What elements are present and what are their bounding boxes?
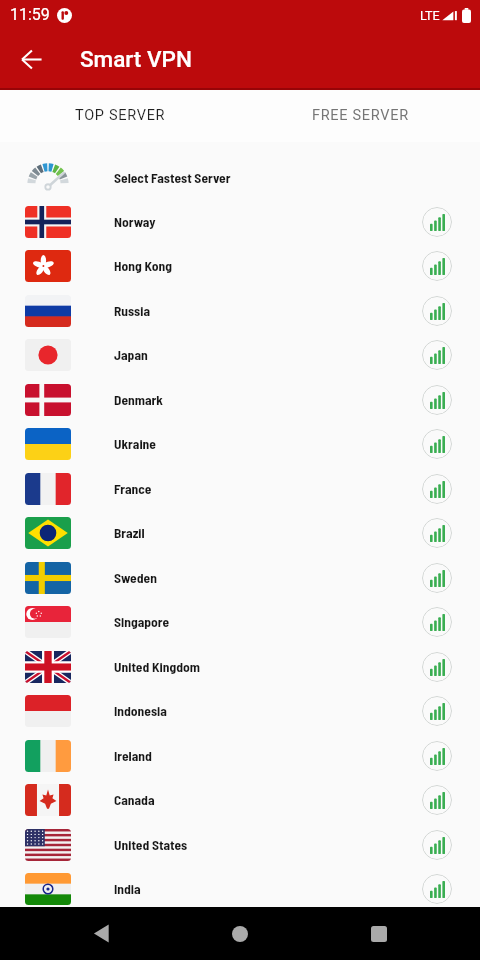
staticText: FREE SERVER bbox=[312, 107, 409, 124]
button[interactable]: Japan bbox=[0, 333, 480, 377]
button[interactable]: United Kingdom bbox=[0, 645, 480, 689]
staticText: Japan bbox=[114, 346, 148, 362]
button[interactable]: Connect bbox=[422, 741, 452, 771]
button[interactable]: Connect bbox=[422, 429, 452, 459]
button[interactable]: Connect bbox=[422, 518, 452, 548]
button[interactable]: Canada bbox=[0, 778, 480, 822]
staticText: Russia bbox=[114, 302, 151, 318]
button[interactable]: Ukraine bbox=[0, 422, 480, 466]
button[interactable]: France bbox=[0, 467, 480, 511]
button[interactable]: Connect bbox=[422, 474, 452, 504]
button[interactable]: Russia bbox=[0, 289, 480, 333]
staticText: Ukraine bbox=[114, 435, 156, 451]
button[interactable]: Connect bbox=[422, 385, 452, 415]
staticText: France bbox=[114, 480, 152, 496]
button[interactable]: Connect bbox=[422, 785, 452, 815]
button[interactable]: Connect bbox=[422, 696, 452, 726]
button[interactable]: Select Fastest Server bbox=[0, 156, 480, 200]
staticText: LTE bbox=[420, 8, 440, 23]
staticText: Smart VPN bbox=[80, 46, 192, 72]
staticText: United Kingdom bbox=[114, 658, 200, 674]
staticText: Canada bbox=[114, 791, 155, 807]
staticText: Indonesia bbox=[114, 702, 167, 718]
button[interactable]: Connect bbox=[422, 207, 452, 237]
button[interactable]: Recent apps bbox=[355, 910, 402, 957]
staticText: Sweden bbox=[114, 569, 157, 585]
staticText: TOP SERVER bbox=[75, 107, 166, 124]
staticText: Ireland bbox=[114, 747, 152, 763]
button[interactable]: United States bbox=[0, 823, 480, 867]
button[interactable]: Connect bbox=[422, 251, 452, 281]
button[interactable]: Connect bbox=[422, 340, 452, 370]
staticText: Singapore bbox=[114, 613, 170, 629]
button[interactable]: Indonesia bbox=[0, 689, 480, 733]
staticText: United States bbox=[114, 836, 188, 852]
staticText: Norway bbox=[114, 213, 156, 229]
staticText: Denmark bbox=[114, 391, 163, 407]
staticText: Hong Kong bbox=[114, 257, 172, 273]
button[interactable]: FREE SERVER bbox=[240, 90, 480, 141]
staticText: Select Fastest Server bbox=[114, 169, 231, 185]
button[interactable]: Singapore bbox=[0, 600, 480, 644]
button[interactable]: Connect bbox=[422, 296, 452, 326]
button[interactable]: India bbox=[0, 867, 480, 911]
staticText: 11:59 bbox=[10, 5, 50, 24]
button[interactable]: Connect bbox=[422, 830, 452, 860]
button[interactable]: Back bbox=[77, 910, 124, 957]
button[interactable]: Norway bbox=[0, 200, 480, 244]
button[interactable]: Connect bbox=[422, 874, 452, 904]
button[interactable]: TOP SERVER bbox=[0, 90, 240, 141]
button[interactable]: Ireland bbox=[0, 734, 480, 778]
button[interactable]: Connect bbox=[422, 563, 452, 593]
staticText: Brazil bbox=[114, 524, 145, 540]
button[interactable]: Home bbox=[216, 910, 263, 957]
button[interactable]: Hong Kong bbox=[0, 244, 480, 288]
button[interactable]: Connect bbox=[422, 652, 452, 682]
button[interactable]: Back bbox=[13, 41, 49, 77]
button[interactable]: Brazil bbox=[0, 511, 480, 555]
staticText: India bbox=[114, 880, 141, 896]
button[interactable]: Sweden bbox=[0, 556, 480, 600]
button[interactable]: Denmark bbox=[0, 378, 480, 422]
button[interactable]: Connect bbox=[422, 607, 452, 637]
